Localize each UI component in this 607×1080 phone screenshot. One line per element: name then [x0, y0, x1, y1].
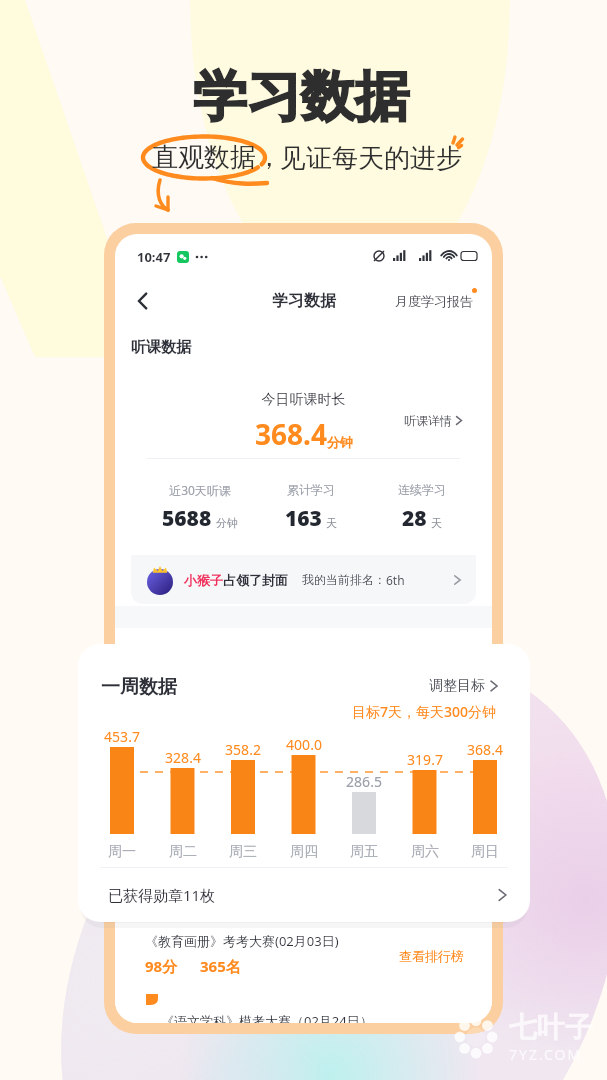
button[interactable]: 小猴子 — [131, 555, 476, 604]
staticText: 周二 — [153, 843, 213, 861]
staticText: 分钟 — [327, 434, 353, 450]
button[interactable]: 月度学习报告 — [395, 293, 473, 309]
staticText: 10:47 — [137, 248, 171, 266]
staticText: 天 — [326, 516, 337, 530]
staticText: 分钟 — [216, 516, 238, 530]
staticText: 调整目标 — [429, 677, 485, 695]
staticText: 400.0 — [274, 735, 334, 754]
staticText: 见证每天的进步 — [280, 142, 462, 175]
staticText: 小猴子 — [184, 572, 223, 588]
staticText: 占领了封面 — [223, 572, 288, 588]
staticText: 我的当前排名： — [302, 572, 386, 587]
staticText: 累计学习 — [251, 482, 371, 497]
staticText: 98分 — [145, 956, 178, 976]
staticText: 学习数据 — [272, 291, 336, 311]
staticText: 周五 — [334, 843, 394, 861]
button[interactable]: 听课详情 — [404, 413, 463, 428]
staticText: 周日 — [455, 843, 515, 861]
staticText: 368.4 — [255, 415, 327, 453]
staticText: 天 — [431, 516, 442, 530]
staticText: 已获得勋章11枚 — [108, 885, 216, 905]
staticText: 查看排行榜 — [399, 948, 464, 964]
button[interactable]: 调整目标 — [429, 677, 499, 695]
staticText: 周三 — [213, 843, 273, 861]
staticText: 学习数据 — [193, 63, 409, 131]
staticText: 七叶子 — [509, 1010, 593, 1045]
button[interactable]: 《教育画册》考考大赛(02月03日) — [131, 900, 473, 989]
staticText: 听课数据 — [131, 338, 191, 357]
staticText: 6th — [386, 572, 405, 588]
button[interactable]: 《语文学科》模考大赛（02月24日） — [131, 989, 473, 1023]
staticText: 今日听课时长 — [131, 391, 476, 409]
staticText: 直观数据， — [152, 141, 282, 174]
staticText: 163 — [285, 504, 322, 533]
staticText: 周四 — [274, 843, 334, 861]
staticText: 目标7天，每天300分钟 — [352, 702, 497, 721]
staticText: 7YZ.COM — [509, 1045, 583, 1064]
button[interactable]: 已获得勋章11枚 — [78, 868, 530, 922]
staticText: 28 — [402, 504, 427, 533]
staticText: 453.7 — [92, 727, 152, 746]
staticText: 368.4 — [455, 740, 515, 759]
staticText: 365名 — [200, 956, 241, 976]
staticText: 《教育画册》考考大赛(02月03日) — [145, 932, 339, 950]
staticText: 周六 — [395, 843, 455, 861]
staticText: 一周数据 — [101, 675, 177, 699]
staticText: 5688 — [162, 504, 212, 533]
staticText: 《语文学科》模考大赛（02月24日） — [161, 1012, 373, 1023]
staticText: 连续学习 — [362, 482, 476, 497]
button[interactable]: Back — [125, 283, 161, 319]
staticText: 328.4 — [153, 748, 213, 767]
staticText: 月度学习报告 — [395, 293, 473, 309]
staticText: 听课详情 — [404, 413, 452, 428]
staticText: 358.2 — [213, 740, 273, 759]
staticText: 近30天听课 — [140, 482, 260, 498]
staticText: 周一 — [92, 843, 152, 861]
staticText: 286.5 — [334, 772, 394, 791]
staticText: 319.7 — [395, 750, 455, 769]
